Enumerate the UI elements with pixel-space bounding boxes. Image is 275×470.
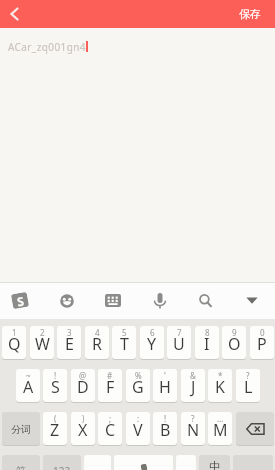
button[interactable]: * [208,369,232,402]
button[interactable] [52,282,82,319]
button[interactable] [236,412,274,445]
button[interactable]: 3 [57,326,81,359]
staticText: Q [8,333,21,355]
staticText: D [77,376,89,398]
staticText: T [120,333,129,355]
staticText: ? [246,370,250,381]
staticText: ? [191,413,195,424]
button[interactable] [114,455,173,470]
button[interactable]: ( [43,412,67,445]
staticText: 分词 [11,423,31,436]
button[interactable]: 保存 [239,7,275,21]
button[interactable]: 123 [43,455,81,470]
staticText: S [16,292,25,308]
staticText: G [132,376,144,398]
staticText: 9 [232,327,237,338]
button[interactable] [98,282,128,319]
staticText: @ [79,370,87,381]
staticText: V [133,419,143,441]
button[interactable]: 0 [250,326,274,359]
staticText: R [92,333,102,355]
staticText: C [105,419,116,441]
staticText: 1 [12,327,17,338]
button[interactable]: ! [43,369,67,402]
staticText: S [51,376,60,398]
staticText: ; [109,413,112,424]
staticText: F [106,376,115,398]
staticText: 6 [150,327,155,338]
staticText: : [137,413,140,424]
button[interactable]: 7 [167,326,191,359]
staticText: … [217,413,224,424]
button[interactable]: 中 [199,455,230,470]
staticText: 5 [122,327,127,338]
staticText: 保存 [239,7,261,21]
button[interactable]: % [126,369,150,402]
staticText: Z [50,419,60,441]
button[interactable] [237,282,267,319]
button[interactable]: ~ [16,369,40,402]
staticText: ( [54,413,57,424]
staticText: N [187,419,200,441]
staticText: B [160,419,171,441]
button[interactable] [0,0,30,28]
button[interactable]: ? [181,412,205,445]
staticText: ) [82,413,85,424]
staticText: 中 [209,459,221,470]
staticText: 3 [67,327,72,338]
staticText: 8 [205,327,210,338]
staticText: 0 [260,327,265,338]
staticText: 符 [16,464,26,470]
staticText: ! [164,413,167,424]
staticText: * [218,370,223,381]
button[interactable]: & [181,369,205,402]
button[interactable]: # [98,369,122,402]
staticText: I [204,333,210,355]
button[interactable]: S [5,282,35,319]
button[interactable]: @ [71,369,95,402]
staticText: ~ [26,370,31,381]
staticText: ACar_zq001gn4 [8,40,86,54]
staticText: ' [164,370,166,381]
button[interactable]: … [208,412,232,445]
staticText: 2 [40,327,45,338]
staticText: 123 [53,464,71,470]
staticText: A [23,376,34,398]
button[interactable]: 5 [112,326,136,359]
button[interactable]: 分词 [2,412,40,445]
staticText: L [244,376,253,398]
staticText: W [35,333,50,355]
staticText: & [190,370,196,381]
staticText: P [257,333,267,355]
button[interactable]: ; [98,412,122,445]
button[interactable]: 4 [85,326,109,359]
button[interactable]: 6 [140,326,164,359]
button[interactable]: 1 [2,326,26,359]
button[interactable]: ! [153,412,177,445]
button[interactable]: 2 [30,326,54,359]
staticText: 7 [177,327,182,338]
staticText: Y [147,333,157,355]
staticText: ! [54,370,57,381]
button[interactable]: ? [236,369,260,402]
staticText: H [159,376,171,398]
staticText: M [213,419,228,441]
staticText: U [173,333,185,355]
staticText: K [215,376,225,398]
staticText: % [135,370,142,381]
staticText: 4 [95,327,100,338]
button[interactable]: 9 [222,326,246,359]
button[interactable]: : [126,412,150,445]
button[interactable] [145,282,175,319]
staticText: # [107,370,113,381]
button[interactable]: ' [153,369,177,402]
button[interactable] [191,282,221,319]
button[interactable]: 8 [195,326,219,359]
button[interactable]: 符 [2,455,40,470]
staticText: O [228,333,241,355]
button[interactable]: ) [71,412,95,445]
staticText: X [78,419,88,441]
